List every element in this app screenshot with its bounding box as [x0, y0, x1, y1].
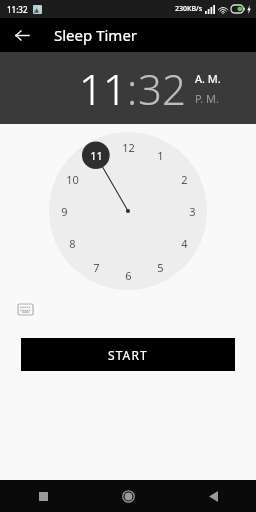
- staticText: 12: [122, 140, 135, 155]
- staticText: 11:32: [7, 4, 28, 15]
- button[interactable]: Recent apps: [0, 480, 86, 512]
- staticText: 9: [61, 204, 68, 219]
- staticText: 5: [157, 260, 164, 275]
- staticText: 10: [66, 172, 79, 187]
- staticText: 8: [69, 236, 76, 251]
- button[interactable]: Home: [86, 480, 171, 512]
- button[interactable]: 32: [138, 60, 186, 117]
- button[interactable]: Back: [171, 480, 256, 512]
- button[interactable]: P. M.: [195, 91, 219, 106]
- staticText: 6: [125, 268, 132, 283]
- button[interactable]: Clock hour picker: [49, 132, 207, 290]
- staticText: 11: [90, 148, 103, 163]
- staticText: Sleep Timer: [54, 25, 138, 45]
- button[interactable]: START: [21, 338, 235, 371]
- staticText: :: [127, 60, 138, 117]
- staticText: START: [108, 347, 148, 363]
- staticText: 1: [157, 148, 164, 163]
- staticText: 3: [189, 204, 196, 219]
- button[interactable]: A. M.: [195, 71, 221, 86]
- staticText: 4: [181, 236, 188, 251]
- staticText: 230KB/s: [175, 4, 203, 14]
- button[interactable]: 11: [79, 60, 127, 117]
- staticText: 2: [181, 172, 188, 187]
- button[interactable]: Back: [8, 21, 36, 49]
- button[interactable]: Switch to text input: [17, 302, 34, 316]
- staticText: 7: [93, 260, 100, 275]
